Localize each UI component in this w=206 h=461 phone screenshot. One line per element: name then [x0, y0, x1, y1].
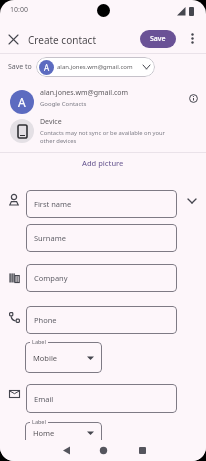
staticText: Company — [34, 273, 68, 283]
button[interactable]: Phone — [26, 306, 177, 334]
staticText: Phone — [34, 315, 57, 325]
button[interactable]: Add picture — [70, 155, 136, 171]
staticText: A — [18, 94, 26, 110]
button[interactable] — [96, 443, 111, 458]
staticText: Home — [33, 428, 55, 438]
button[interactable]: First name — [26, 190, 177, 218]
button[interactable] — [59, 443, 74, 458]
button[interactable]: Email — [26, 384, 177, 413]
staticText: A — [44, 62, 50, 73]
button[interactable]: Company — [26, 264, 177, 292]
staticText: Save — [150, 34, 166, 44]
staticText: Save to — [8, 62, 32, 72]
staticText: Create contact — [28, 33, 97, 47]
staticText: alan.jones.wm@gmail.com — [40, 88, 129, 98]
button[interactable]: Save — [140, 30, 176, 48]
button[interactable]: Home — [25, 422, 102, 444]
staticText: First name — [34, 199, 72, 209]
staticText: Add picture — [82, 158, 124, 168]
staticText: 10:00 — [10, 5, 28, 15]
button[interactable] — [186, 32, 199, 45]
button[interactable]: Surname — [26, 224, 177, 252]
button[interactable] — [0, 86, 206, 116]
staticText: alan.jones.wm@gmail.com — [57, 63, 133, 71]
staticText: Mobile — [33, 353, 58, 363]
button[interactable]: Mobile — [25, 342, 102, 373]
staticText: Email — [34, 394, 54, 404]
staticText: Google Contacts — [40, 100, 87, 108]
button[interactable] — [187, 92, 200, 105]
staticText: Surname — [34, 233, 66, 243]
button[interactable] — [135, 443, 150, 458]
staticText: Label — [32, 418, 46, 425]
staticText: Label — [32, 338, 46, 345]
button[interactable] — [5, 31, 22, 48]
button[interactable]: A — [36, 57, 155, 77]
button[interactable] — [0, 116, 206, 149]
staticText: Device — [40, 117, 62, 127]
staticText: Contacts may not sync or be available on… — [40, 129, 166, 145]
button[interactable] — [184, 193, 200, 209]
